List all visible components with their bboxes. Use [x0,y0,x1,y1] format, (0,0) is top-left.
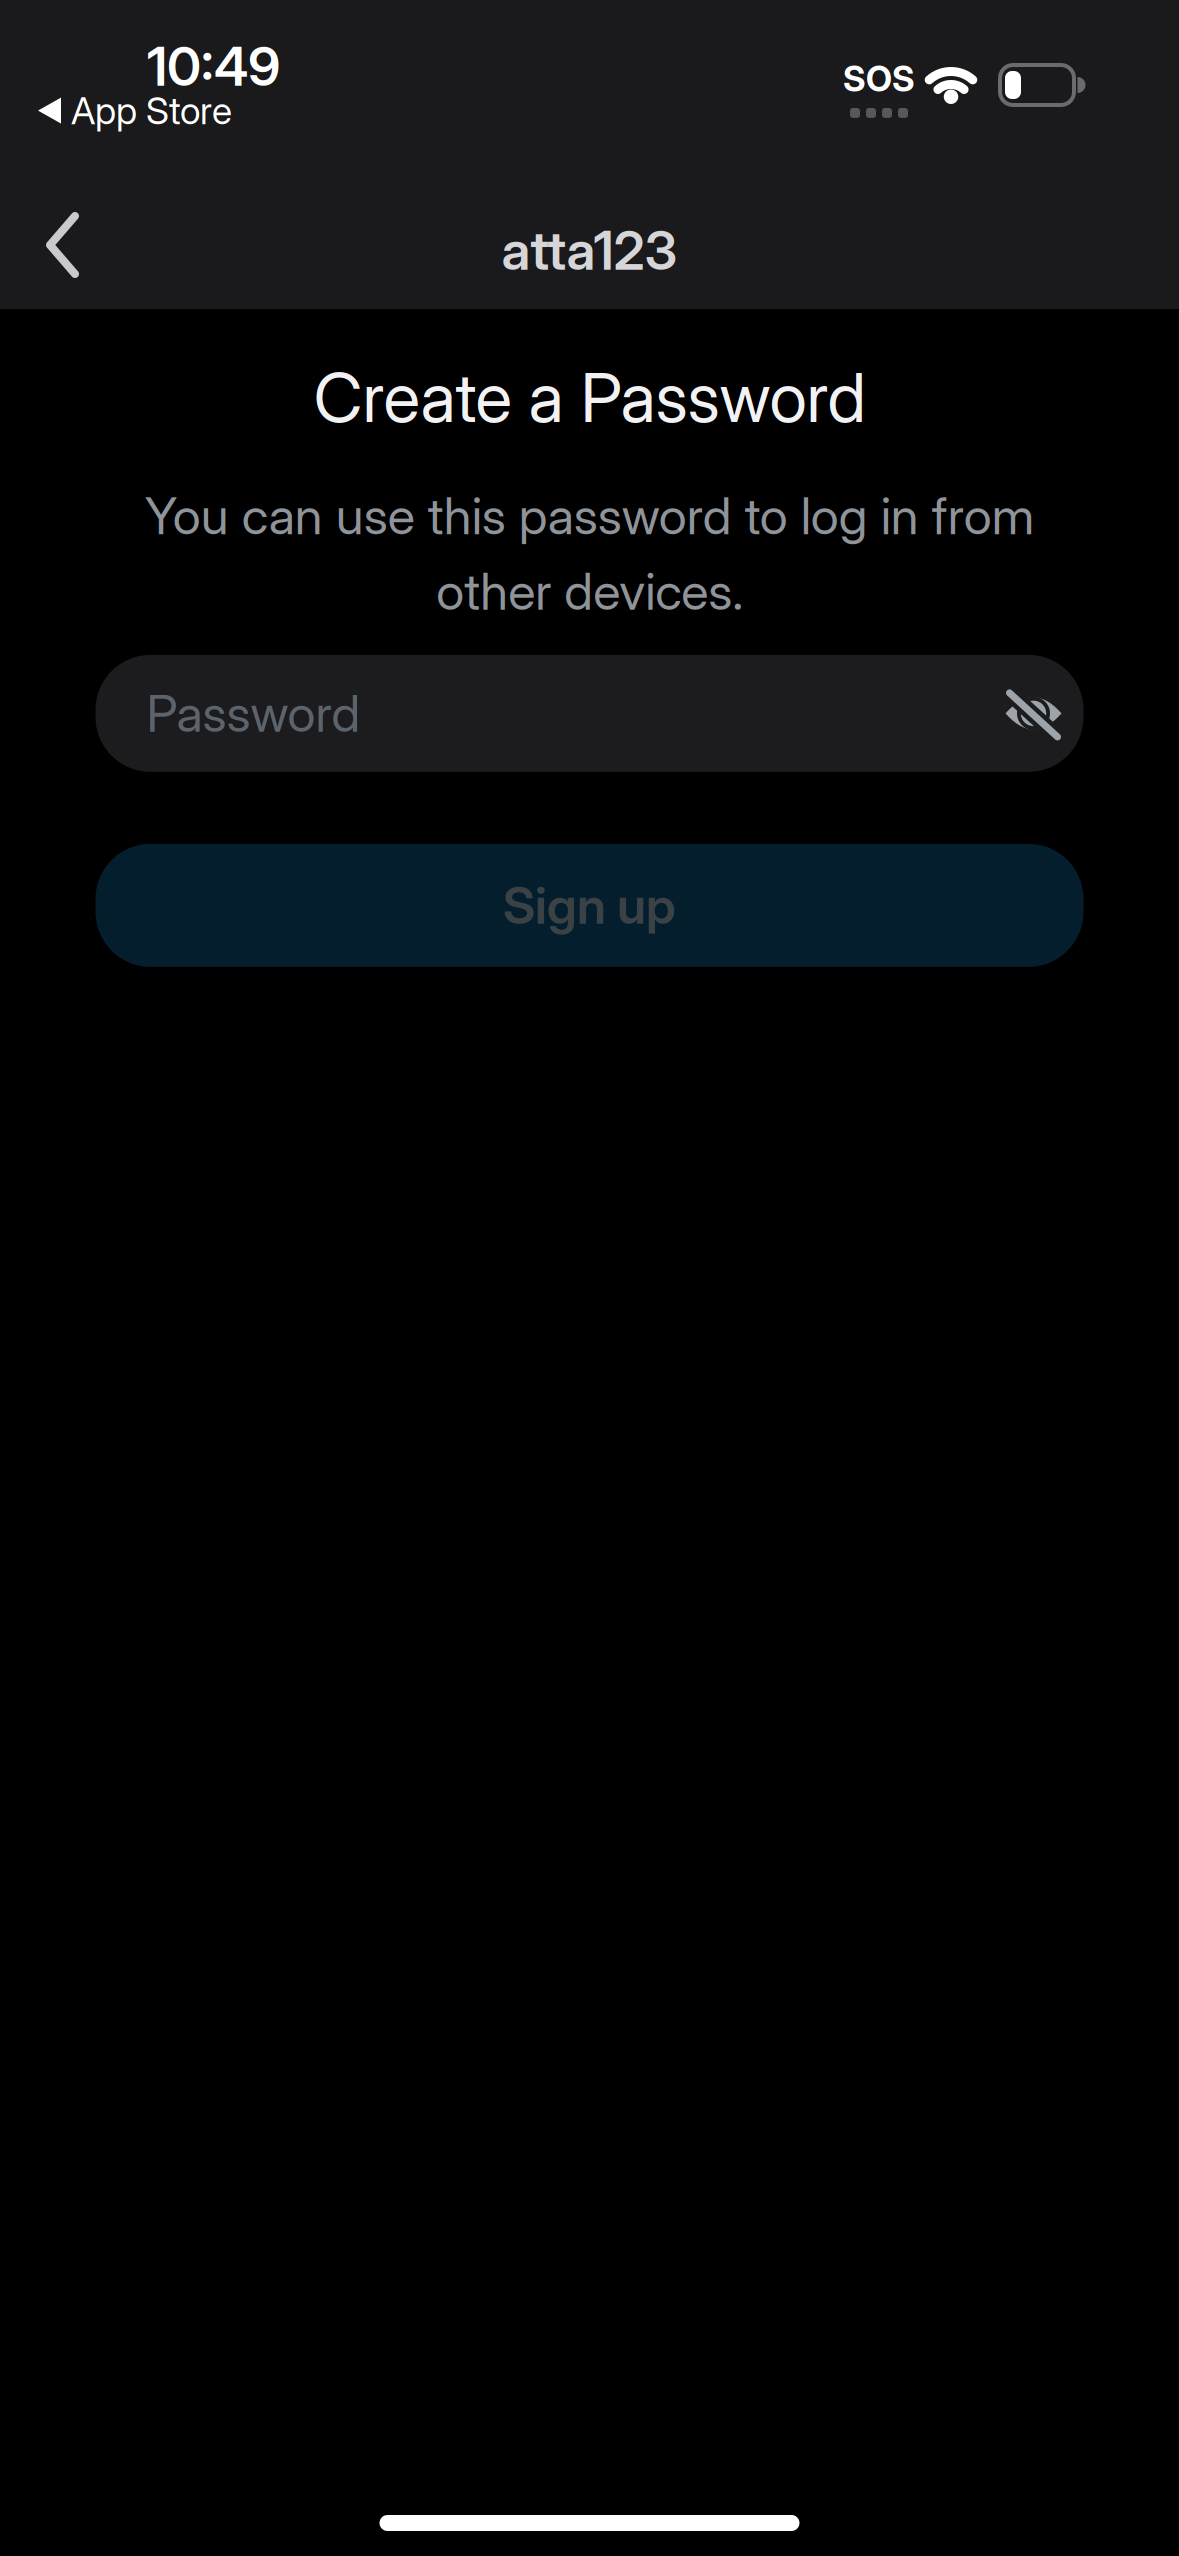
staticText: 10:49 [147,34,280,98]
staticText: atta123 [501,218,677,282]
staticText: Sign up [503,875,676,936]
staticText: Create a Password [313,356,865,438]
button[interactable]: Password [95,655,1083,772]
button[interactable]: Sign up [95,844,1083,967]
staticText: SOS [843,58,915,100]
button[interactable]: Back to App Store [38,88,232,133]
staticText: Password [146,683,360,744]
staticText: App Store [71,88,232,133]
button[interactable]: Back [0,196,115,294]
staticText: You can use this password to log in from… [144,485,1034,622]
